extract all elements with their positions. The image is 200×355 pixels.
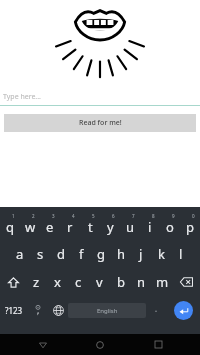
button[interactable]: Period (146, 296, 166, 324)
staticText: 9 (172, 213, 175, 219)
button[interactable]: English (68, 303, 146, 318)
staticText: f (79, 245, 84, 263)
button[interactable]: 7 (120, 212, 140, 240)
button[interactable]: Backspace (173, 268, 200, 296)
staticText: English (97, 307, 118, 315)
button[interactable]: d (51, 240, 71, 268)
staticText: d (57, 245, 65, 263)
staticText: z (33, 273, 40, 291)
staticText: o (166, 218, 174, 236)
button[interactable]: x (47, 268, 68, 296)
staticText: q (6, 218, 14, 236)
button[interactable]: Change language (48, 296, 68, 324)
staticText: y (107, 218, 114, 236)
button[interactable]: Home (85, 334, 115, 355)
button[interactable]: 0 (180, 212, 200, 240)
staticText: a (16, 245, 24, 263)
staticText: 4 (72, 213, 75, 219)
staticText: u (126, 218, 135, 236)
button[interactable]: Enter (166, 296, 200, 324)
staticText: j (139, 245, 143, 263)
staticText: 5 (92, 213, 95, 219)
staticText: e (46, 218, 54, 236)
staticText: l (179, 245, 183, 263)
staticText: p (186, 218, 194, 236)
staticText: 1 (12, 213, 15, 219)
button[interactable]: v (89, 268, 110, 296)
button[interactable]: Comma (28, 296, 48, 324)
button[interactable]: k (151, 240, 171, 268)
staticText: 8 (152, 213, 155, 219)
button[interactable]: 4 (60, 212, 80, 240)
button[interactable]: 1 (0, 212, 20, 240)
button[interactable]: Recent apps (143, 334, 173, 355)
button[interactable]: n (131, 268, 152, 296)
staticText: Read for me! (79, 118, 122, 128)
staticText: h (117, 245, 126, 263)
button[interactable]: g (91, 240, 111, 268)
staticText: k (158, 245, 165, 263)
staticText: g (97, 245, 105, 263)
staticText: b (117, 273, 125, 291)
button[interactable]: a (9, 240, 30, 268)
staticText: r (67, 218, 73, 236)
button[interactable]: 6 (100, 212, 120, 240)
staticText: c (75, 273, 82, 291)
button[interactable]: l (171, 240, 191, 268)
button[interactable]: z (26, 268, 47, 296)
staticText: t (88, 218, 93, 236)
staticText: 3 (52, 213, 55, 219)
button[interactable]: Type here... (0, 88, 200, 105)
button[interactable]: 5 (80, 212, 100, 240)
button[interactable]: j (131, 240, 151, 268)
button[interactable]: c (68, 268, 89, 296)
staticText: 7 (132, 213, 135, 219)
button[interactable]: f (71, 240, 91, 268)
staticText: ?123 (5, 305, 23, 316)
button[interactable]: m (152, 268, 173, 296)
button[interactable]: s (30, 240, 51, 268)
button[interactable]: Back (28, 334, 58, 355)
staticText: n (137, 273, 146, 291)
staticText: m (156, 273, 169, 291)
staticText: i (148, 218, 152, 236)
staticText: s (37, 245, 44, 263)
button[interactable]: 3 (40, 212, 60, 240)
staticText: v (96, 273, 103, 291)
button[interactable]: Shift (0, 268, 26, 296)
button[interactable]: h (111, 240, 131, 268)
button[interactable]: 2 (20, 212, 40, 240)
button[interactable]: Read for me! (4, 114, 196, 132)
button[interactable]: 8 (140, 212, 160, 240)
staticText: w (25, 218, 36, 236)
staticText: 2 (32, 213, 35, 219)
button[interactable]: ?123 (0, 296, 28, 324)
staticText: 6 (112, 213, 115, 219)
staticText: x (54, 273, 61, 291)
button[interactable]: 9 (160, 212, 180, 240)
staticText: 0 (192, 213, 195, 219)
staticText: Type here... (3, 92, 41, 102)
button[interactable]: b (110, 268, 131, 296)
